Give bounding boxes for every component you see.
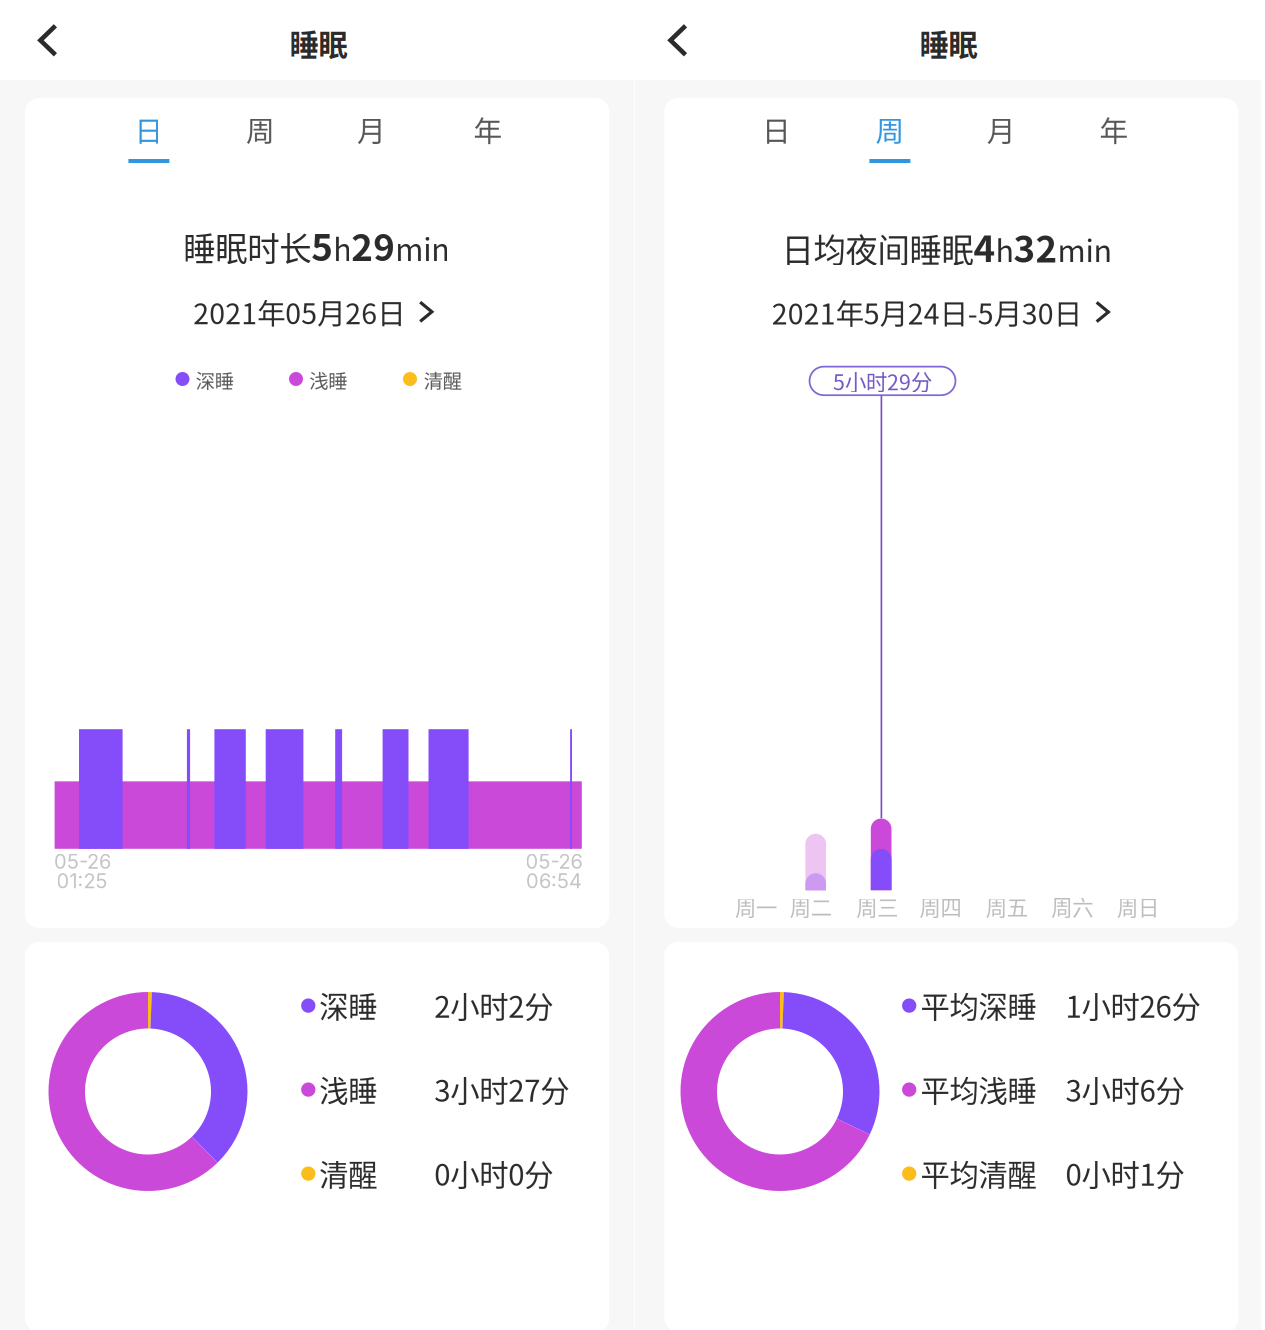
staticText: 睡眠: [920, 22, 978, 64]
staticText: 3小时6分: [1065, 1068, 1184, 1110]
staticText: 周四: [919, 891, 961, 922]
staticText: 深睡: [196, 366, 234, 394]
staticText: 29: [351, 218, 395, 272]
staticText: 深睡: [319, 984, 377, 1026]
staticText: 32: [1013, 220, 1057, 273]
button[interactable]: Back: [22, 8, 73, 73]
staticText: 平均清醒: [921, 1152, 1037, 1194]
button[interactable]: 周: [844, 98, 936, 188]
staticText: 2小时2分: [434, 984, 553, 1026]
staticText: h: [333, 226, 351, 270]
staticText: 01:25: [56, 869, 107, 893]
staticText: 0小时1分: [1065, 1152, 1184, 1194]
staticText: 年: [1099, 108, 1128, 150]
staticText: 日: [134, 108, 163, 150]
button[interactable]: 2021年5月24日-5月30日: [772, 285, 1108, 338]
staticText: 月: [357, 108, 386, 150]
staticText: 周二: [790, 891, 832, 922]
button[interactable]: Back: [652, 8, 703, 73]
staticText: 3小时27分: [434, 1068, 569, 1110]
button[interactable]: 日: [103, 98, 195, 188]
staticText: 睡眠时长: [183, 223, 311, 270]
staticText: 周三: [856, 891, 898, 922]
staticText: min: [395, 226, 450, 270]
staticText: 2021年5月24日-5月30日: [772, 291, 1082, 332]
staticText: 5: [311, 218, 333, 272]
staticText: 05-26: [525, 849, 582, 874]
staticText: 周: [246, 108, 275, 150]
staticText: 平均深睡: [921, 984, 1037, 1026]
staticText: 浅睡: [309, 366, 347, 394]
staticText: 月: [987, 108, 1016, 150]
staticText: 1小时26分: [1065, 984, 1200, 1026]
staticText: min: [1057, 227, 1112, 271]
staticText: 5小时29分: [833, 365, 932, 396]
staticText: 周一: [735, 891, 777, 922]
staticText: 0小时0分: [434, 1152, 553, 1194]
staticText: 周: [875, 108, 904, 150]
button[interactable]: 年: [1068, 98, 1160, 188]
staticText: h: [995, 227, 1013, 271]
staticText: 睡眠: [289, 22, 347, 64]
staticText: 05-26: [54, 849, 111, 874]
staticText: 周六: [1051, 891, 1093, 922]
staticText: 2021年05月26日: [193, 291, 405, 332]
button[interactable]: 年: [442, 98, 534, 188]
staticText: 平均浅睡: [921, 1068, 1037, 1110]
staticText: 4: [973, 220, 995, 273]
staticText: 日: [762, 108, 791, 150]
staticText: 周五: [986, 891, 1028, 922]
staticText: 日均夜间睡眠: [781, 225, 973, 272]
button[interactable]: 2021年05月26日: [193, 285, 432, 338]
button[interactable]: 月: [955, 98, 1047, 188]
button[interactable]: 月: [326, 98, 418, 188]
staticText: 06:54: [526, 869, 582, 893]
button[interactable]: 日: [730, 98, 822, 188]
staticText: 清醒: [319, 1152, 377, 1194]
staticText: 年: [473, 108, 502, 150]
staticText: 浅睡: [319, 1068, 377, 1110]
staticText: 周日: [1117, 891, 1159, 922]
button[interactable]: 周: [214, 98, 306, 188]
staticText: 清醒: [424, 366, 462, 394]
